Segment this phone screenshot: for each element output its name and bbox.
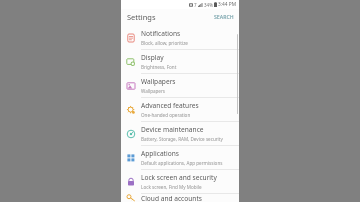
staticText: SEARCH — [214, 13, 234, 20]
button[interactable]: Advanced features — [121, 98, 239, 121]
staticText: Wallpapers — [141, 77, 176, 86]
button[interactable]: Lock screen and security — [121, 170, 239, 193]
staticText: Advanced features — [141, 101, 199, 110]
staticText: Default applications, App permissions — [141, 160, 223, 166]
staticText: Cloud and accounts — [141, 194, 202, 202]
button[interactable]: Cloud and accounts — [121, 194, 239, 202]
button[interactable]: Wallpapers — [121, 74, 239, 97]
staticText: Applications — [141, 149, 179, 158]
staticText: Device maintenance — [141, 125, 204, 134]
button[interactable]: Device maintenance — [121, 122, 239, 145]
staticText: 3:44 PM — [218, 1, 237, 8]
staticText: 34% — [204, 2, 213, 8]
staticText: 7 — [194, 2, 197, 8]
staticText: Display — [141, 53, 164, 62]
staticText: Lock screen, Find My Mobile — [141, 184, 202, 190]
staticText: Brightness, Font — [141, 64, 177, 70]
button[interactable]: SEARCH — [209, 10, 239, 23]
button[interactable]: Notifications — [121, 26, 239, 49]
staticText: Lock screen and security — [141, 173, 217, 182]
staticText: Wallpapers — [141, 88, 166, 94]
staticText: Notifications — [141, 29, 181, 38]
button[interactable]: Applications — [121, 146, 239, 169]
staticText: Block, allow, prioritize — [141, 40, 188, 46]
button[interactable]: Display — [121, 50, 239, 73]
staticText: One-handed operation — [141, 112, 191, 118]
staticText: Battery, Storage, RAM, Device security — [141, 136, 223, 142]
staticText: Settings — [127, 12, 156, 22]
